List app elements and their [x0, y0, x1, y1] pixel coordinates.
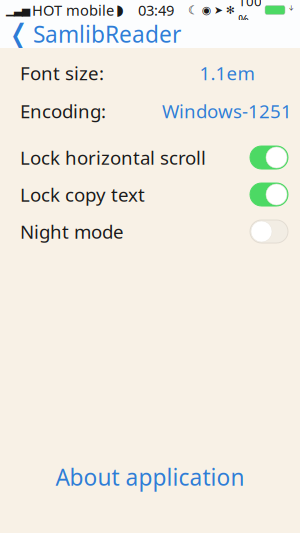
staticText: HOT mobile: [32, 0, 114, 20]
staticText: ◗: [116, 2, 124, 18]
staticText: ➤: [214, 4, 223, 16]
staticText: Windows-1251: [162, 99, 292, 123]
staticText: 03:49: [138, 0, 174, 20]
staticText: ☾: [188, 3, 199, 17]
button[interactable]: Night mode: [0, 213, 300, 250]
staticText: Lock horizontal scroll: [20, 145, 206, 170]
staticText: ᛎ: [288, 5, 294, 15]
button[interactable]: Encoding:: [0, 92, 300, 130]
staticText: Night mode: [20, 219, 124, 244]
staticText: ✻: [226, 4, 235, 16]
button[interactable]: Lock copy text: [0, 176, 300, 213]
button[interactable]: Font size:: [0, 54, 300, 92]
staticText: Encoding:: [20, 99, 106, 123]
staticText: 1.1em: [199, 61, 254, 85]
staticText: ◉: [202, 4, 211, 16]
button[interactable]: About application: [0, 454, 300, 500]
button[interactable]: Lock horizontal scroll: [0, 139, 300, 176]
button[interactable]: ❬: [0, 14, 181, 54]
staticText: Lock copy text: [20, 182, 145, 207]
staticText: SamlibReader: [33, 19, 181, 49]
staticText: About application: [55, 462, 244, 492]
staticText: Font size:: [20, 61, 104, 85]
staticText: ❬: [7, 18, 30, 50]
staticText: ▁▃▅: [6, 4, 30, 16]
staticText: 100 %: [238, 0, 262, 28]
